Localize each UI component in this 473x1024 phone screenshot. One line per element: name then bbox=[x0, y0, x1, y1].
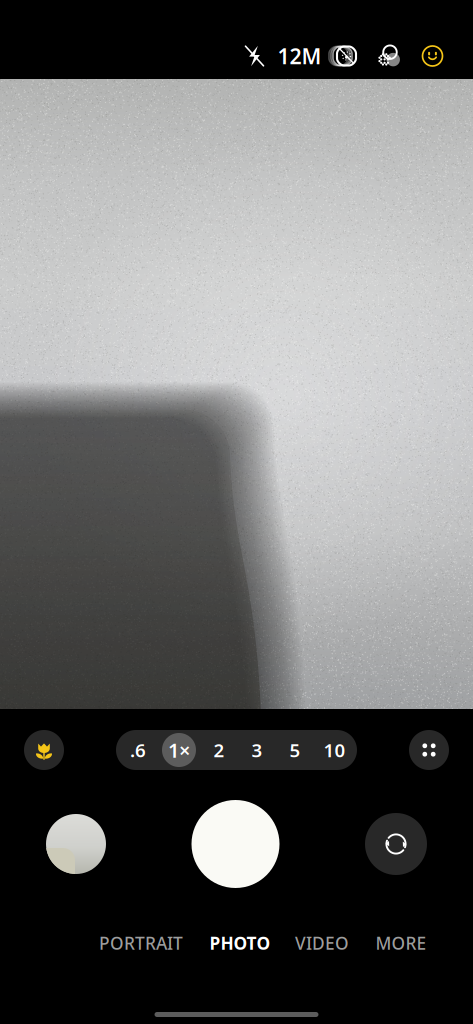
button[interactable]: More camera options bbox=[409, 730, 449, 770]
staticText: 3 bbox=[251, 738, 262, 762]
button[interactable]: PHOTO bbox=[190, 926, 289, 960]
button[interactable]: Take photo bbox=[191, 800, 279, 888]
staticText: VIDEO bbox=[295, 931, 349, 954]
staticText: 1× bbox=[168, 737, 190, 763]
button[interactable]: .6 bbox=[118, 730, 158, 770]
staticText: PORTRAIT bbox=[99, 931, 183, 954]
button[interactable]: Flash off bbox=[232, 34, 277, 78]
button[interactable]: Live Photo off bbox=[322, 34, 367, 78]
staticText: 12M bbox=[277, 42, 321, 70]
staticText: MORE bbox=[375, 931, 426, 954]
button[interactable]: Resolution 12 megapixels bbox=[277, 34, 322, 78]
staticText: PHOTO bbox=[209, 931, 270, 954]
button[interactable]: Photo library bbox=[46, 814, 106, 874]
button[interactable]: Photographic Styles bbox=[367, 34, 411, 78]
button[interactable]: 1× bbox=[158, 730, 200, 770]
button[interactable]: Camera Control bbox=[411, 34, 454, 78]
button[interactable]: Switch camera bbox=[365, 813, 427, 875]
staticText: 10 bbox=[323, 738, 345, 762]
button[interactable]: VIDEO bbox=[289, 926, 354, 960]
button[interactable]: 5 bbox=[276, 730, 314, 770]
staticText: 2 bbox=[213, 738, 224, 762]
staticText: .6 bbox=[130, 738, 146, 762]
button[interactable]: 2 bbox=[200, 730, 238, 770]
button[interactable]: PORTRAIT bbox=[91, 926, 190, 960]
staticText: 5 bbox=[289, 738, 300, 762]
button[interactable]: Macro bbox=[24, 730, 64, 770]
button[interactable]: 10 bbox=[314, 730, 355, 770]
button[interactable]: 3 bbox=[238, 730, 276, 770]
button[interactable]: MORE bbox=[354, 926, 447, 960]
